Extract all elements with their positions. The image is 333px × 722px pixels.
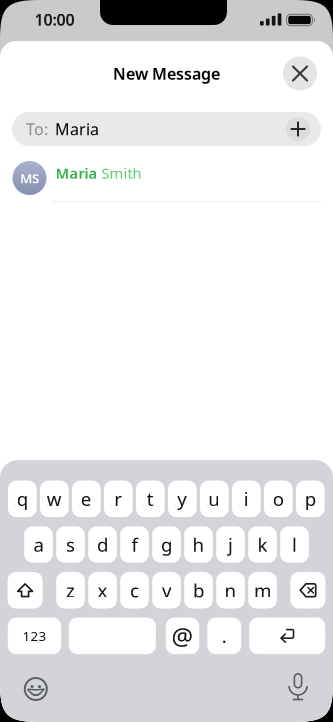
button[interactable]: Add Contact: [286, 117, 310, 141]
staticText: d: [97, 532, 108, 557]
button[interactable]: x: [88, 572, 117, 608]
staticText: 123: [22, 627, 46, 645]
staticText: v: [162, 578, 171, 603]
button[interactable]: Shift: [8, 572, 43, 608]
button[interactable]: n: [216, 572, 245, 608]
staticText: m: [254, 578, 271, 603]
button[interactable]: w: [40, 481, 69, 517]
staticText: 10:00: [34, 9, 74, 30]
button[interactable]: b: [184, 572, 213, 608]
button[interactable]: r: [104, 481, 133, 517]
button[interactable]: g: [152, 526, 181, 563]
button[interactable]: space: [69, 618, 156, 654]
button[interactable]: Delete: [290, 572, 325, 608]
staticText: Maria: [55, 163, 97, 183]
button[interactable]: e: [72, 481, 101, 517]
staticText: z: [66, 578, 75, 603]
button[interactable]: i: [232, 481, 261, 517]
button[interactable]: MS: [0, 156, 333, 200]
staticText: Maria: [55, 118, 99, 140]
button[interactable]: f: [120, 526, 149, 563]
staticText: w: [47, 486, 62, 511]
staticText: New Message: [113, 63, 220, 84]
button[interactable]: Dictation: [283, 672, 313, 702]
button[interactable]: h: [184, 526, 213, 563]
staticText: c: [130, 578, 139, 603]
button[interactable]: m: [248, 572, 277, 608]
button[interactable]: o: [264, 481, 293, 517]
staticText: h: [192, 532, 204, 557]
staticText: j: [228, 532, 233, 557]
staticText: l: [292, 532, 297, 557]
staticText: n: [224, 578, 236, 603]
staticText: i: [244, 486, 249, 511]
staticText: a: [33, 532, 43, 557]
staticText: f: [131, 532, 137, 557]
button[interactable]: d: [88, 526, 117, 563]
button[interactable]: p: [296, 481, 325, 517]
staticText: MS: [20, 169, 39, 187]
button[interactable]: j: [216, 526, 245, 563]
staticText: p: [305, 486, 316, 511]
button[interactable]: q: [8, 481, 37, 517]
button[interactable]: v: [152, 572, 181, 608]
staticText: r: [114, 486, 122, 511]
button[interactable]: @: [166, 618, 199, 654]
staticText: To:: [26, 118, 48, 140]
staticText: g: [161, 532, 172, 557]
staticText: y: [177, 486, 187, 511]
button[interactable]: Close: [283, 56, 317, 90]
button[interactable]: a: [24, 526, 53, 563]
button[interactable]: c: [120, 572, 149, 608]
staticText: o: [273, 486, 284, 511]
staticText: u: [208, 486, 220, 511]
button[interactable]: 123: [8, 618, 61, 654]
staticText: x: [97, 578, 107, 603]
button[interactable]: To: Maria: [12, 112, 321, 146]
button[interactable]: u: [200, 481, 229, 517]
button[interactable]: t: [136, 481, 165, 517]
staticText: t: [147, 486, 154, 511]
button[interactable]: l: [280, 526, 309, 563]
button[interactable]: z: [56, 572, 85, 608]
button[interactable]: Return: [249, 618, 325, 654]
staticText: s: [66, 532, 75, 557]
staticText: @: [171, 620, 193, 652]
staticText: q: [17, 486, 28, 511]
staticText: b: [193, 578, 204, 603]
staticText: k: [257, 532, 267, 557]
staticText: .: [222, 623, 227, 648]
button[interactable]: k: [248, 526, 277, 563]
staticText: e: [81, 486, 92, 511]
staticText: Smith: [101, 163, 141, 183]
button[interactable]: s: [56, 526, 85, 563]
button[interactable]: y: [168, 481, 197, 517]
button[interactable]: .: [207, 618, 241, 654]
button[interactable]: Emoji: [21, 674, 51, 704]
